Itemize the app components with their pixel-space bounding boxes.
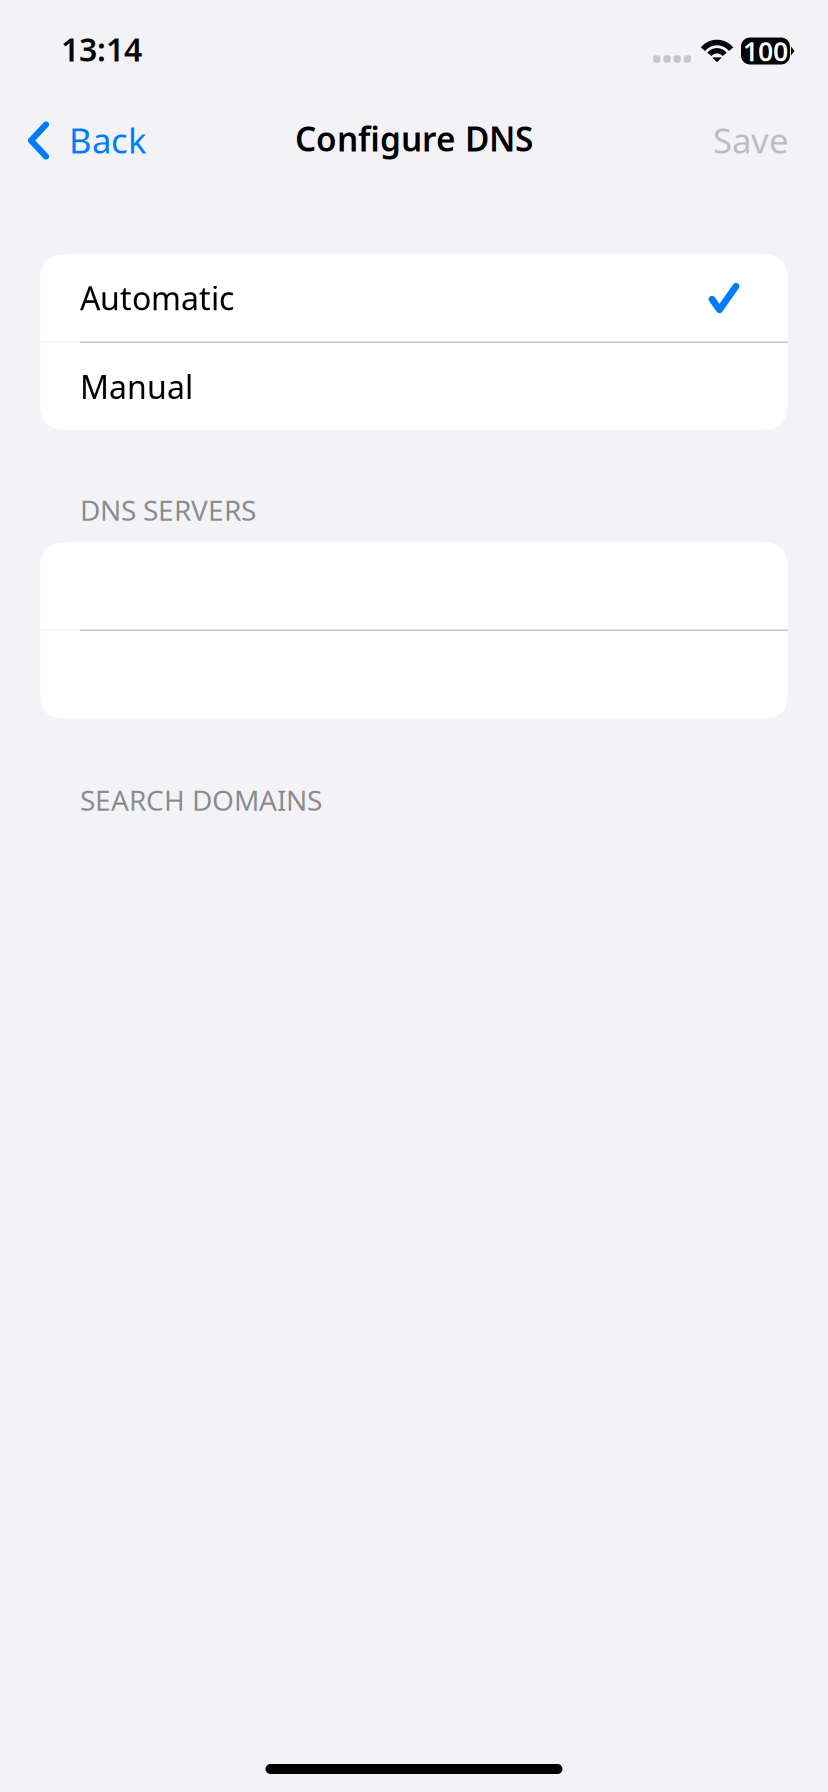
button[interactable] <box>40 542 788 629</box>
button[interactable]: Manual <box>40 343 788 430</box>
button[interactable]: Back <box>0 96 159 180</box>
staticText: Automatic <box>80 276 234 319</box>
staticText: SEARCH DOMAINS <box>80 781 322 819</box>
staticText: DNS SERVERS <box>80 491 256 529</box>
staticText: 13:14 <box>61 28 142 70</box>
staticText: 100 <box>743 33 788 69</box>
button[interactable]: Automatic <box>40 254 788 341</box>
staticText: Manual <box>80 365 193 408</box>
button[interactable]: Save <box>695 96 828 180</box>
staticText: Configure DNS <box>295 116 533 161</box>
staticText: Back <box>69 117 147 163</box>
staticText: Save <box>713 117 789 163</box>
